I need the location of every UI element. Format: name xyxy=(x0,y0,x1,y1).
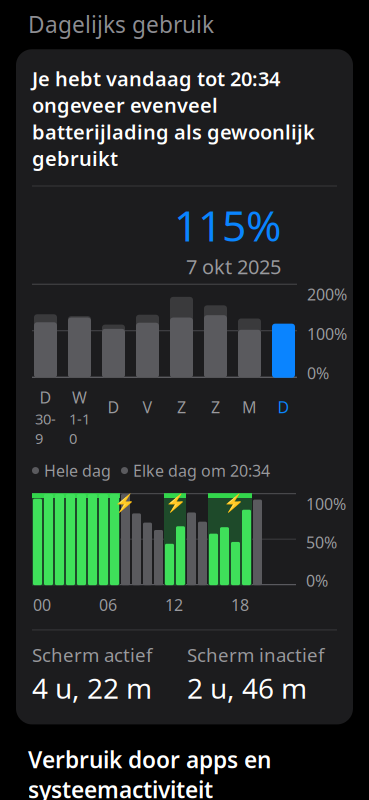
staticText: D xyxy=(39,387,51,408)
staticText: ⚡ xyxy=(223,493,245,513)
staticText: W xyxy=(72,387,87,408)
staticText: 7 okt 2025 xyxy=(186,253,281,280)
staticText: 0% xyxy=(306,570,328,591)
staticText: Z xyxy=(211,396,220,418)
staticText: Z xyxy=(177,396,186,418)
staticText: 30-9 xyxy=(35,409,56,448)
staticText: 00 xyxy=(33,594,51,615)
staticText: 200% xyxy=(307,284,347,305)
staticText: V xyxy=(142,396,152,418)
staticText: Hele dag xyxy=(44,460,111,481)
staticText: 50% xyxy=(306,532,337,553)
staticText: ⚡ xyxy=(165,493,187,513)
staticText: 06 xyxy=(99,594,117,615)
staticText: 4 u, 22 m xyxy=(32,669,152,706)
staticText: 12 xyxy=(165,594,183,615)
staticText: Scherm inactief xyxy=(187,642,324,667)
staticText: 0% xyxy=(307,362,329,384)
staticText: D xyxy=(277,396,289,418)
staticText: 2 u, 46 m xyxy=(187,669,307,706)
staticText: Verbruik door apps en systeemactiviteit xyxy=(28,744,271,800)
staticText: Dagelijks gebruik xyxy=(28,9,214,39)
staticText: 115% xyxy=(174,196,281,253)
staticText: D xyxy=(107,396,119,418)
staticText: 100% xyxy=(306,493,346,514)
staticText: Scherm actief xyxy=(32,642,152,667)
staticText: Je hebt vandaag tot 20:34 ongeveer evenv… xyxy=(32,65,315,171)
staticText: 18 xyxy=(231,594,249,615)
staticText: M xyxy=(242,396,257,418)
staticText: ⚡ xyxy=(114,493,136,513)
staticText: Elke dag om 20:34 xyxy=(133,460,270,481)
staticText: 100% xyxy=(307,323,347,344)
staticText: 1-10 xyxy=(69,409,90,448)
